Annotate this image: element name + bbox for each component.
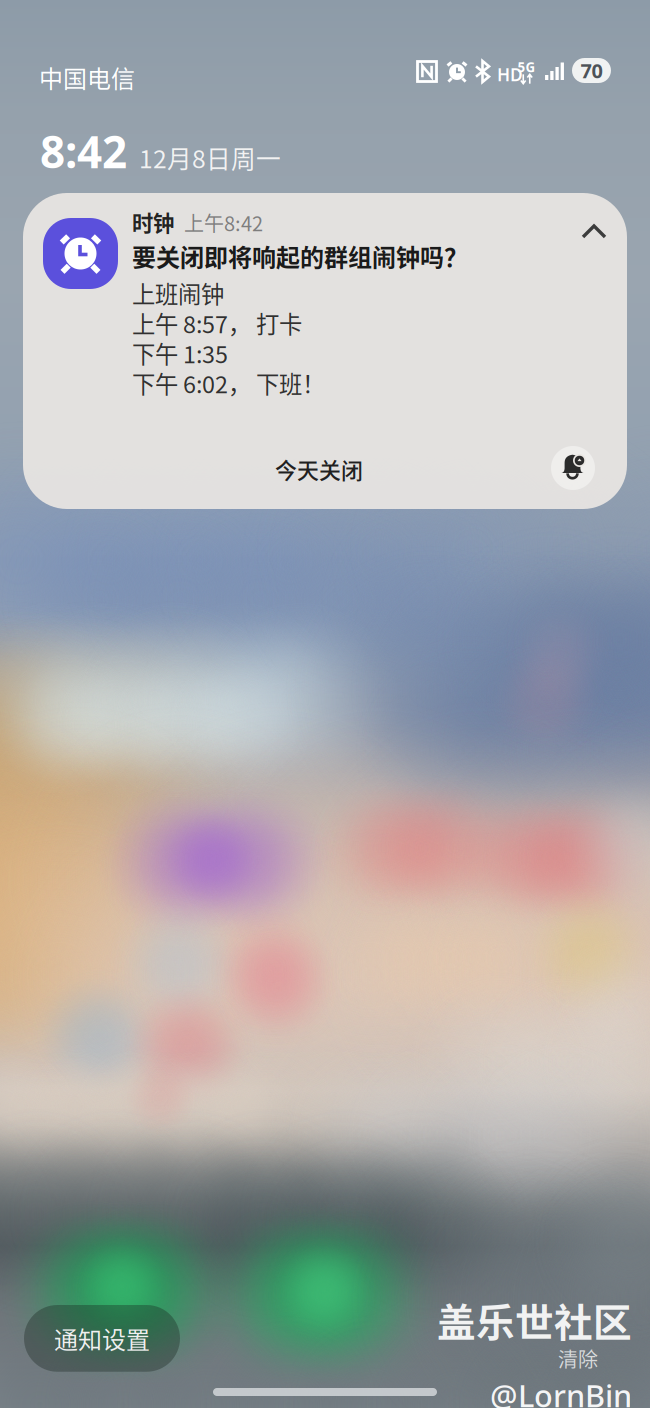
- button[interactable]: Collapse notification: [565, 207, 623, 256]
- staticText: 下午 6:02， 下班！: [132, 366, 325, 400]
- staticText: 上午8:42: [184, 208, 263, 237]
- staticText: 5G: [517, 58, 535, 76]
- staticText: 盖乐世社区: [437, 1292, 632, 1348]
- staticText: 通知设置: [54, 1321, 150, 1356]
- staticText: 12月8日周一: [139, 140, 281, 175]
- staticText: 中国电信: [39, 60, 135, 95]
- staticText: 要关闭即将响起的群组闹钟吗？: [132, 239, 468, 273]
- staticText: 70: [580, 57, 602, 84]
- staticText: 时钟: [132, 207, 174, 237]
- button[interactable]: 今天关闭: [239, 446, 399, 492]
- button[interactable]: Notification options: [551, 446, 595, 490]
- staticText: 下午 1:35: [132, 336, 228, 370]
- staticText: 8:42: [40, 122, 127, 180]
- staticText: 今天关闭: [275, 453, 363, 485]
- staticText: 上班闹钟: [132, 276, 224, 310]
- staticText: 上午 8:57， 打卡: [132, 306, 302, 340]
- staticText: 清除: [558, 1344, 598, 1373]
- button[interactable]: 通知设置: [24, 1305, 180, 1372]
- staticText: @LornBin: [490, 1375, 632, 1408]
- staticText: HD: [497, 63, 523, 86]
